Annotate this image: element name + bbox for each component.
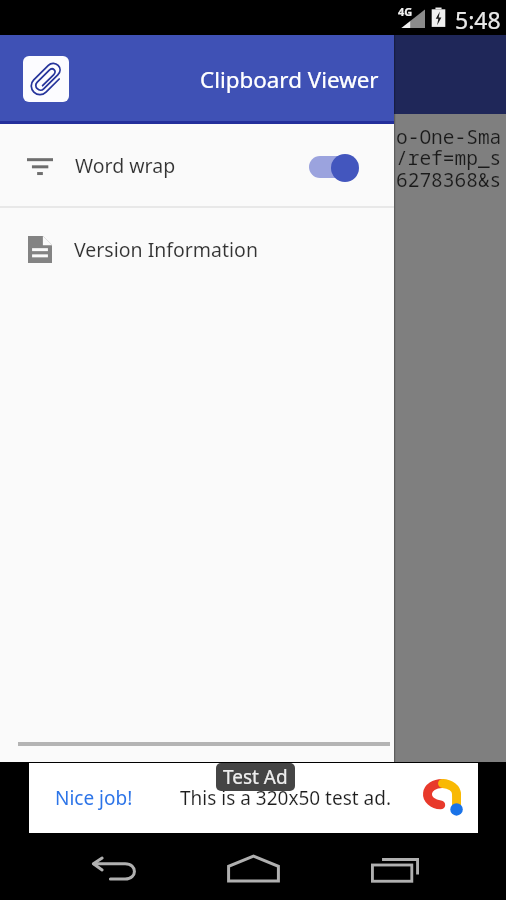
- button[interactable]: Word wrap toggle: [308, 145, 368, 185]
- staticText: 4G: [398, 4, 413, 19]
- button[interactable]: Home: [213, 842, 293, 900]
- button[interactable]: Version Information: [0, 208, 394, 290]
- button[interactable]: Word wrap: [0, 124, 394, 206]
- button[interactable]: Back: [73, 842, 153, 900]
- button[interactable]: Recent apps: [353, 842, 433, 900]
- button[interactable]: App icon: [23, 56, 69, 102]
- staticText: Nice job!: [55, 785, 133, 811]
- staticText: o-One-Sma /ref=mp_s 6278368&s: [396, 123, 502, 193]
- staticText: Word wrap: [75, 152, 176, 179]
- staticText: Version Information: [74, 236, 258, 263]
- staticText: This is a 320x50 test ad.: [180, 785, 392, 811]
- staticText: Clipboard Viewer: [200, 64, 379, 95]
- staticText: Test Ad: [223, 764, 288, 790]
- button[interactable]: Nice job!: [29, 763, 478, 833]
- staticText: 5:48: [455, 4, 501, 35]
